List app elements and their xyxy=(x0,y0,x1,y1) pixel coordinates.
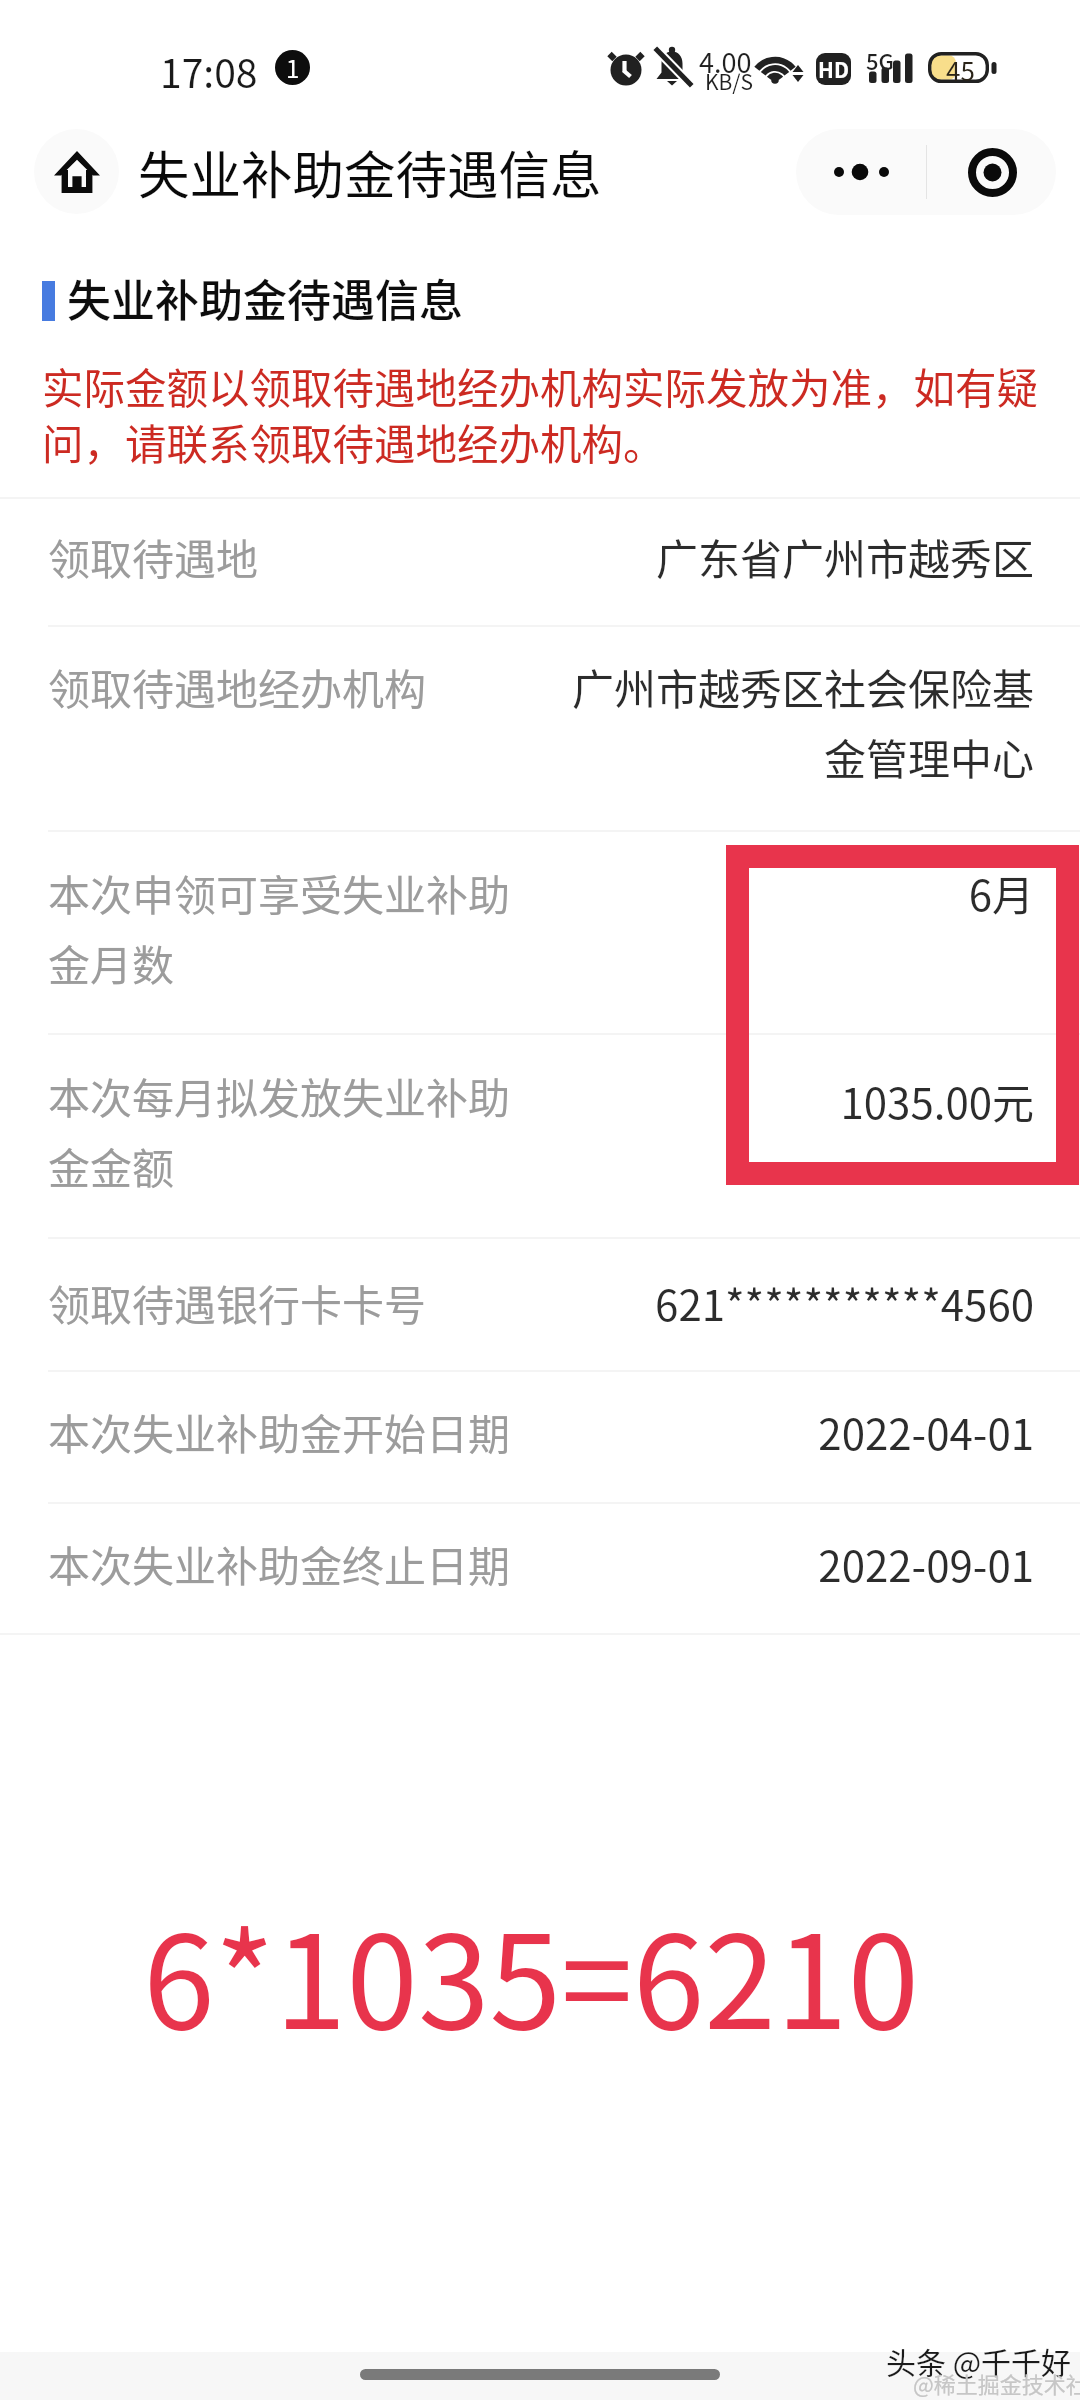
staticText: 4.00 xyxy=(699,42,752,81)
staticText: 头条 @千千好 xyxy=(886,2339,1072,2382)
staticText: 领取待遇地经办机构 xyxy=(48,656,427,717)
button[interactable]: Close mini program xyxy=(927,129,1056,215)
staticText: KB/S xyxy=(705,66,754,96)
staticText: 本次失业补助金终止日期 xyxy=(48,1533,511,1594)
staticText: 5G xyxy=(866,44,894,76)
staticText: 失业补助金待遇信息 xyxy=(67,266,463,330)
staticText: 本次申领可享受失业补助 金月数 xyxy=(48,862,511,993)
staticText: 2022-09-01 xyxy=(420,1533,1034,1594)
staticText: 1 xyxy=(286,50,300,85)
staticText: 本次失业补助金开始日期 xyxy=(48,1401,511,1462)
button[interactable]: 本次申领可享受失业补助 金月数 xyxy=(0,830,1080,1033)
staticText: 失业补助金待遇信息 xyxy=(138,134,602,209)
staticText: HD xyxy=(818,54,849,84)
button[interactable]: 领取待遇银行卡卡号 xyxy=(0,1237,1080,1370)
staticText: 2022-04-01 xyxy=(420,1401,1034,1462)
button[interactable]: 本次每月拟发放失业补助 金金额 xyxy=(0,1033,1080,1237)
staticText: 广州市越秀区社会保险基 金管理中心 xyxy=(420,656,1034,787)
staticText: 实际金额以领取待遇地经办机构实际发放为准，如有疑问，请联系领取待遇地经办机构。 xyxy=(42,356,1047,472)
staticText: 领取待遇地 xyxy=(48,526,259,587)
staticText: 本次每月拟发放失业补助 金金额 xyxy=(48,1065,511,1196)
staticText: 621***********4560 xyxy=(420,1272,1034,1333)
button[interactable]: Home xyxy=(34,129,119,214)
button[interactable]: 领取待遇地经办机构 xyxy=(0,625,1080,830)
button[interactable]: 领取待遇地 xyxy=(0,497,1080,625)
staticText: 6月 xyxy=(420,862,1034,923)
staticText: 1035.00元 xyxy=(420,1070,1034,1131)
button[interactable]: 本次失业补助金开始日期 xyxy=(0,1370,1080,1502)
button[interactable]: 本次失业补助金终止日期 xyxy=(0,1502,1080,1633)
staticText: @稀土掘金技术社区 xyxy=(913,2367,1080,2399)
staticText: 领取待遇银行卡卡号 xyxy=(48,1272,427,1333)
button[interactable]: More options xyxy=(796,129,926,215)
staticText: 广东省广州市越秀区 xyxy=(420,526,1034,587)
staticText: 45 xyxy=(946,51,975,89)
staticText: 17:08 xyxy=(160,43,258,99)
staticText: 6*1035=6210 xyxy=(0,1879,1071,2066)
